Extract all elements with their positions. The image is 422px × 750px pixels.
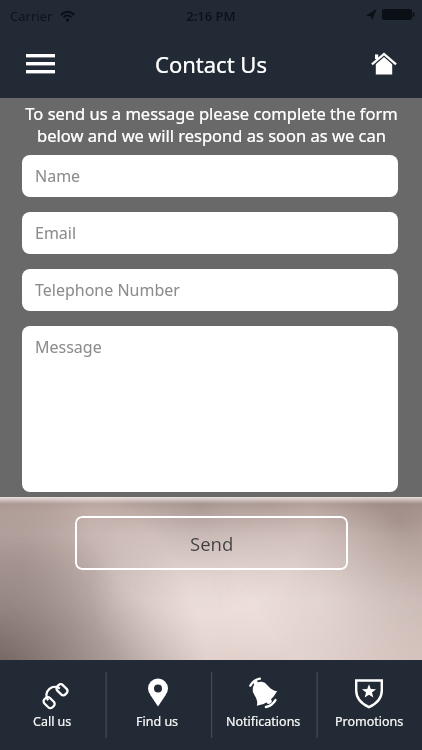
button[interactable]: Promotions [316, 660, 422, 750]
staticText: Promotions [335, 713, 404, 730]
staticText: Notifications [226, 713, 301, 730]
staticText: Carrier [10, 7, 53, 25]
button[interactable]: Telephone Number [22, 269, 398, 311]
staticText: To send us a message please complete the… [25, 102, 398, 124]
staticText: Email [35, 222, 77, 244]
button[interactable]: Notifications [210, 660, 316, 750]
button[interactable]: Find us [105, 660, 210, 750]
staticText: Find us [136, 713, 179, 730]
button[interactable]: Call us [0, 660, 105, 750]
staticText: below and we will respond as soon as we … [37, 124, 386, 146]
staticText: Telephone Number [35, 279, 180, 301]
staticText: Send [190, 531, 234, 556]
staticText: Name [35, 165, 81, 187]
staticText: 2:16 PM [0, 7, 422, 25]
button[interactable] [14, 42, 66, 86]
button[interactable]: Email [22, 212, 398, 254]
button[interactable] [358, 40, 410, 86]
button[interactable]: Name [22, 155, 398, 197]
button[interactable]: Send [75, 516, 348, 570]
staticText: Contact Us [155, 49, 267, 79]
staticText: Message [35, 336, 102, 358]
button[interactable]: Message [22, 326, 398, 492]
staticText: Call us [33, 713, 72, 730]
